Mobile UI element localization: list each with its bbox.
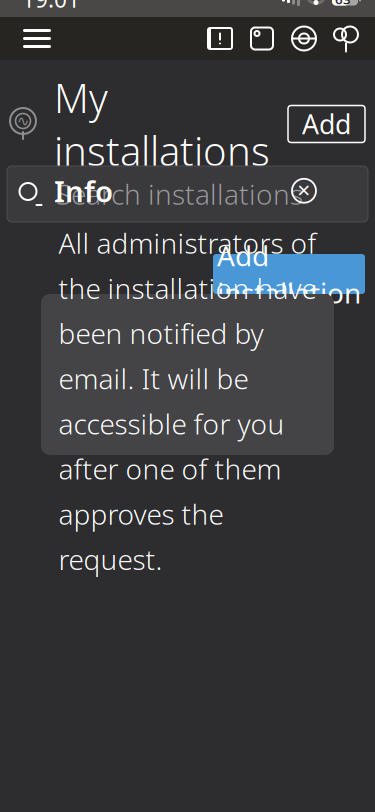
staticText: Search installations	[56, 175, 303, 213]
button[interactable]: Language	[283, 17, 325, 59]
staticText: Info	[54, 171, 113, 210]
staticText: 63	[335, 0, 351, 8]
staticText: ∿	[17, 113, 29, 129]
button[interactable]: Alerts	[199, 17, 241, 59]
button[interactable]: Add	[288, 105, 365, 142]
button[interactable]: Download	[325, 17, 367, 59]
button[interactable]: Tags	[241, 17, 283, 59]
staticText: Add	[302, 106, 351, 142]
button[interactable]: Add installation	[213, 254, 365, 294]
staticText: Add installation	[217, 237, 361, 311]
button[interactable]: Menu	[9, 17, 65, 59]
button[interactable]: Search installations	[7, 166, 368, 222]
staticText: All administrators of the installation h…	[58, 224, 316, 578]
button[interactable]: Close	[287, 174, 321, 208]
staticText: My installations	[54, 71, 270, 177]
staticText: ✕	[296, 181, 311, 201]
staticText: 19:01	[22, 0, 80, 14]
